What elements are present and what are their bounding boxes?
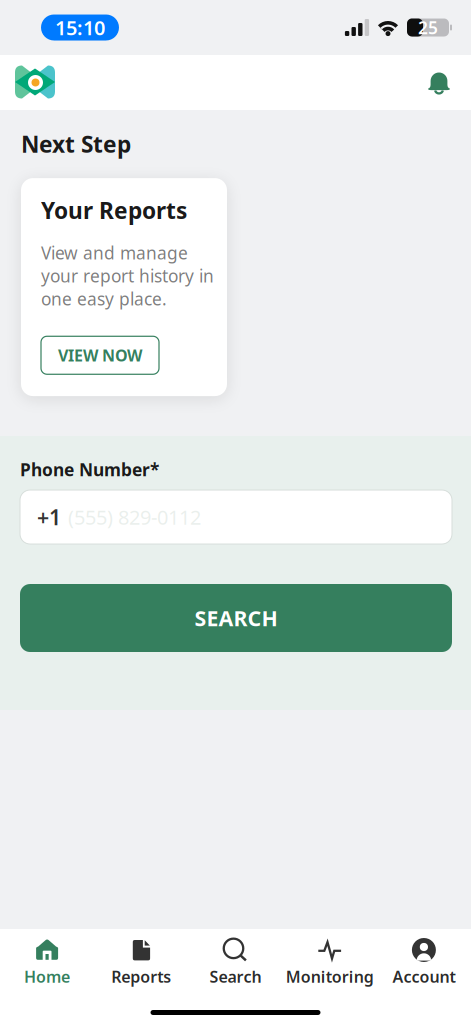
staticText: 25 [418, 16, 438, 39]
button[interactable]: Account [377, 933, 471, 1000]
staticText: +1 [37, 503, 61, 531]
button[interactable]: Search [188, 933, 283, 1000]
staticText: your report history in [41, 264, 214, 287]
button[interactable]: Home [0, 933, 94, 1000]
staticText: Account [392, 966, 455, 987]
staticText: (555) 829-0112 [68, 504, 201, 530]
staticText: Search [209, 966, 261, 987]
staticText: SEARCH [194, 604, 277, 632]
staticText: Next Step [21, 129, 131, 159]
button[interactable]: SEARCH [20, 584, 452, 652]
staticText: Phone Number* [20, 458, 159, 481]
staticText: Home [24, 966, 70, 987]
staticText: one easy place. [41, 287, 167, 310]
staticText: Reports [111, 966, 171, 987]
button[interactable]: Notifications [422, 65, 456, 99]
staticText: View and manage [41, 241, 188, 264]
staticText: VIEW NOW [58, 345, 142, 366]
staticText: 15:10 [55, 14, 105, 41]
button[interactable]: Reports [94, 933, 188, 1000]
staticText: Monitoring [286, 966, 374, 987]
button[interactable]: VIEW NOW [41, 336, 159, 374]
button[interactable]: Monitoring [283, 933, 377, 1000]
staticText: Your Reports [41, 195, 187, 225]
